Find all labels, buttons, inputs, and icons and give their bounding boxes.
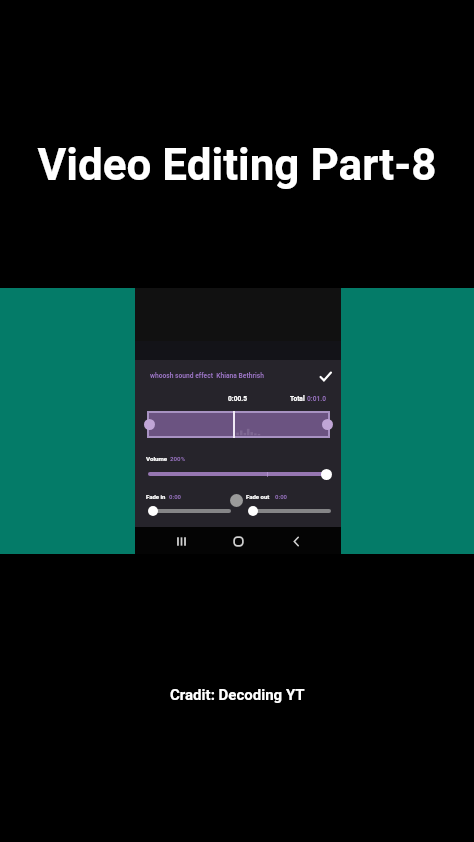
- staticText: whoosh sound effect Khiana Bethrish: [150, 372, 264, 380]
- staticText: Fade out: [246, 493, 270, 500]
- button[interactable]: whoosh sound effect Khiana Bethrish: [150, 365, 334, 387]
- staticText: 0:01.0: [307, 395, 326, 403]
- staticText: 0:00: [275, 493, 288, 500]
- button[interactable]: [148, 505, 236, 517]
- button[interactable]: [148, 468, 333, 480]
- staticText: 0:00: [169, 493, 182, 500]
- button[interactable]: Apply: [316, 367, 334, 385]
- button[interactable]: [147, 411, 330, 438]
- staticText: 0:00.5: [228, 395, 247, 403]
- staticText: 200%: [170, 455, 186, 462]
- staticText: Cradit: Decoding YT: [170, 686, 305, 704]
- button[interactable]: Recents: [169, 529, 193, 553]
- staticText: Total: [290, 395, 307, 403]
- staticText: Fade in: [146, 493, 166, 500]
- staticText: Volume: [146, 455, 169, 462]
- staticText: Video Editing Part-8: [37, 139, 437, 191]
- button[interactable]: Home: [226, 529, 250, 553]
- button[interactable]: Back: [284, 529, 308, 553]
- button[interactable]: [248, 505, 336, 517]
